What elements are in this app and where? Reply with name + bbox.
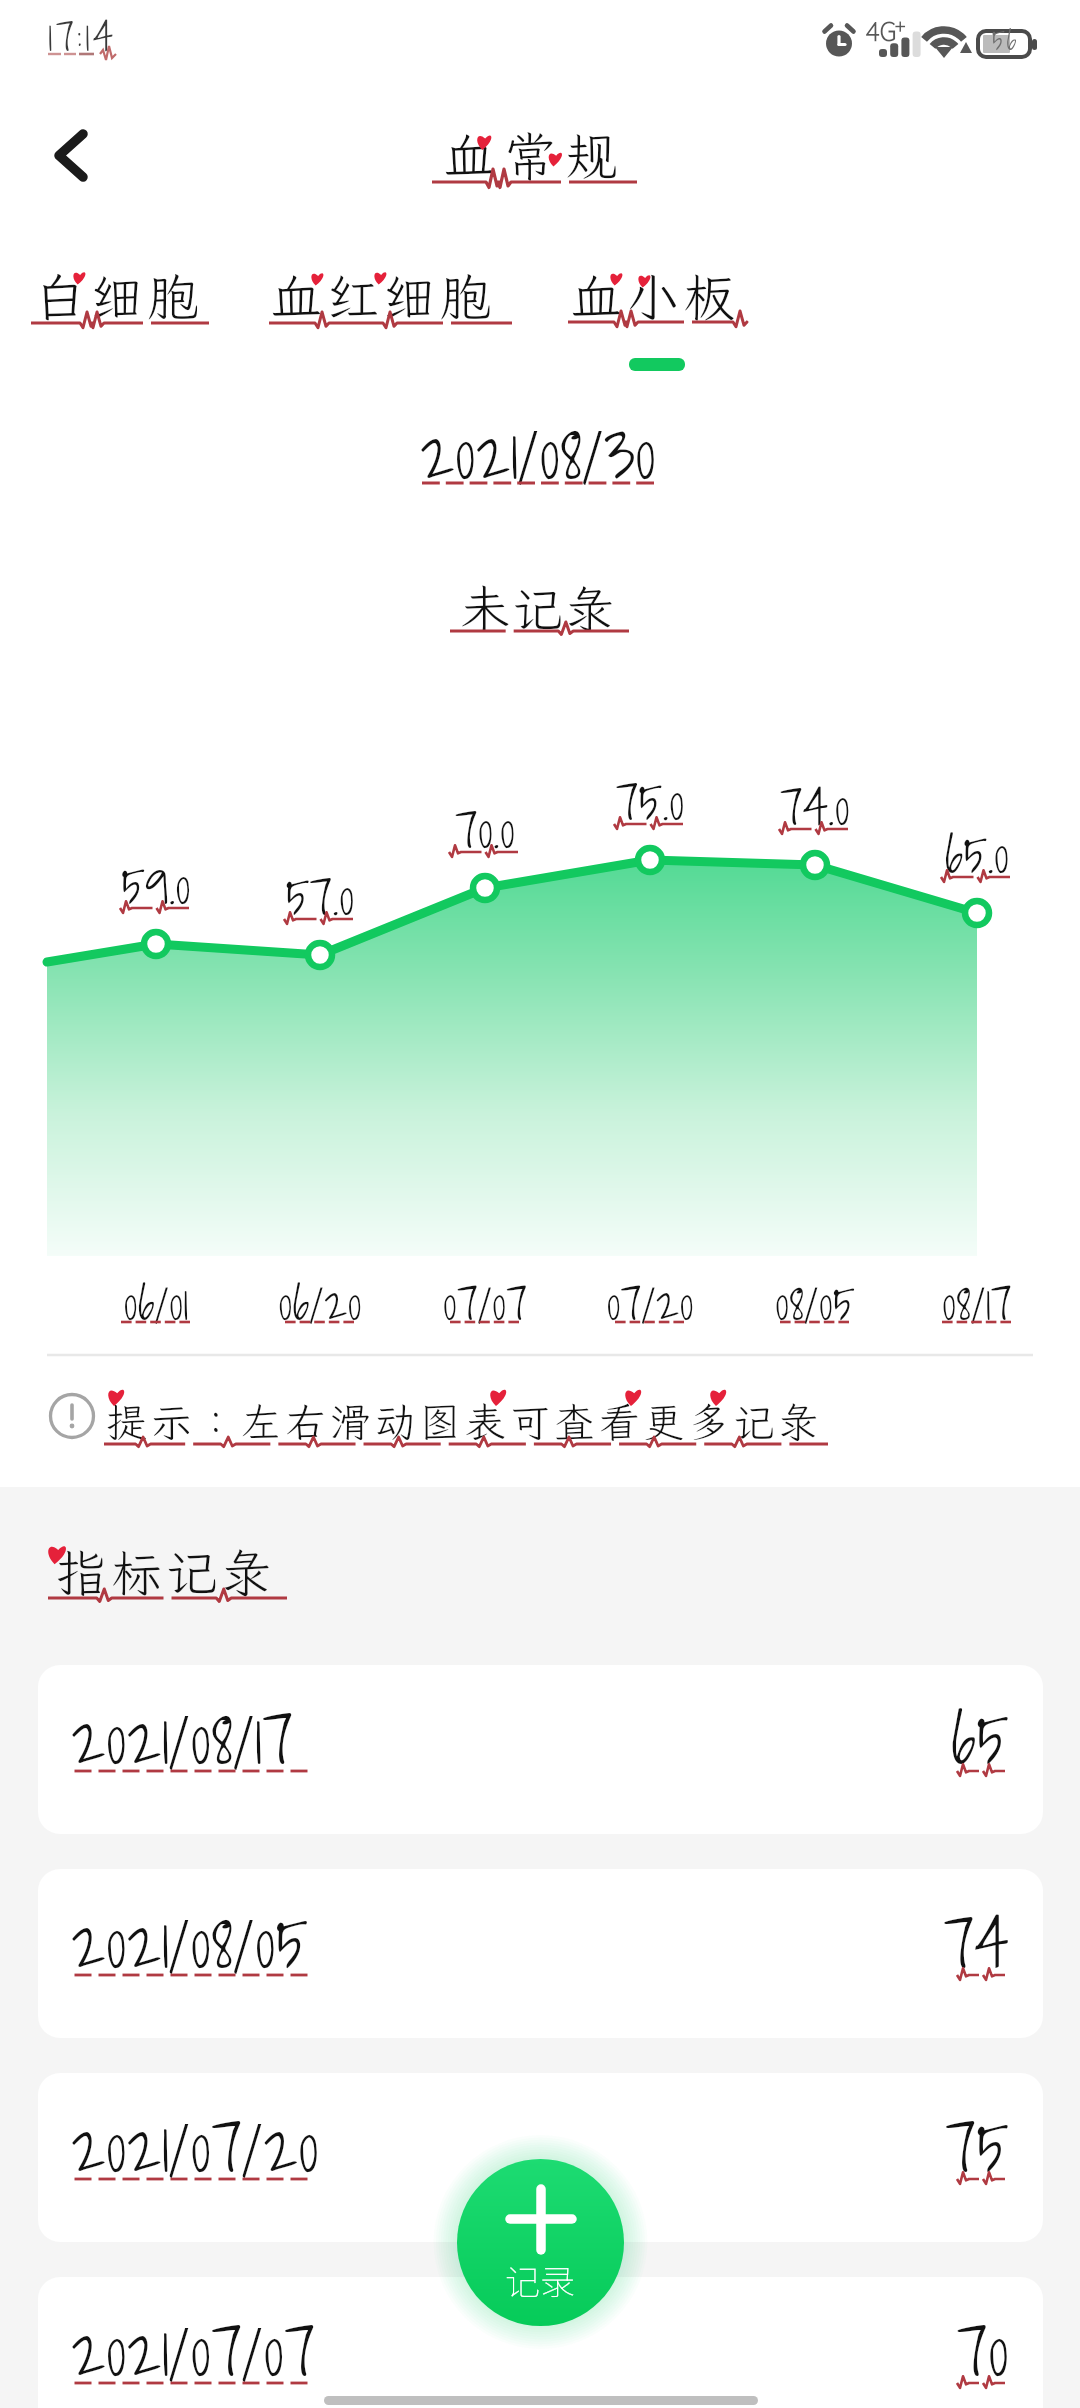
button[interactable]: Back — [21, 106, 121, 206]
staticText: 65 — [807, 1684, 1009, 1793]
staticText: 17:14 — [48, 4, 117, 68]
staticText: 记录 — [505, 2254, 576, 2305]
staticText: 2021/08/30 — [338, 399, 738, 508]
staticText: 06/01 — [46, 1266, 266, 1340]
button[interactable] — [38, 1665, 1043, 1834]
staticText: 未记录 — [460, 575, 618, 641]
button[interactable] — [38, 2277, 1043, 2408]
staticText: 08/17 — [867, 1266, 1080, 1340]
staticText: 2021/07/07 — [71, 2296, 316, 2405]
staticText: 75.0 — [540, 761, 760, 841]
staticText: 4G — [866, 11, 897, 49]
button[interactable] — [38, 1869, 1043, 2038]
staticText: 74.0 — [705, 766, 925, 846]
button[interactable] — [38, 2073, 1043, 2242]
staticText: 07/20 — [540, 1266, 760, 1340]
staticText: + — [895, 11, 906, 40]
staticText: 70 — [807, 2296, 1009, 2405]
staticText: 2021/08/05 — [71, 1888, 309, 1997]
button[interactable]: 记录 — [457, 2159, 624, 2326]
staticText: 75 — [807, 2092, 1009, 2201]
button[interactable] — [564, 266, 754, 340]
staticText: 提示：左右滑动图表可查看更多记录 — [106, 1395, 823, 1449]
staticText: 65.0 — [867, 814, 1080, 894]
staticText: 74 — [807, 1888, 1009, 1997]
button[interactable] — [28, 266, 219, 340]
staticText: 56 — [992, 18, 1019, 61]
staticText: 指标记录 — [56, 1538, 277, 1605]
staticText: 白细胞 — [34, 262, 204, 330]
staticText: 血常规 — [443, 121, 627, 189]
staticText: 06/20 — [210, 1266, 430, 1340]
staticText: 07/07 — [375, 1266, 595, 1340]
staticText: 2021/07/20 — [71, 2092, 320, 2201]
button[interactable] — [264, 266, 507, 340]
staticText: 08/05 — [705, 1266, 925, 1340]
staticText: 57.0 — [210, 856, 430, 936]
staticText: 70.0 — [375, 789, 595, 869]
staticText: 血红细胞 — [270, 262, 497, 330]
staticText: 血小板 — [570, 262, 740, 330]
staticText: 2021/08/17 — [71, 1684, 294, 1793]
staticText: 59.0 — [46, 845, 266, 925]
